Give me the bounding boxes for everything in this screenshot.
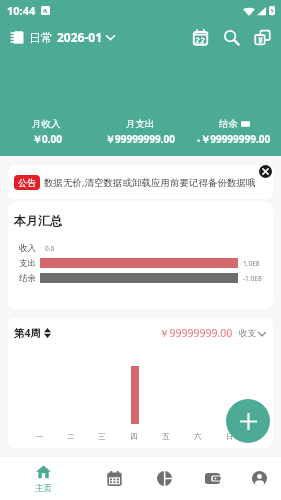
- button[interactable]: Calendar: [86, 457, 142, 500]
- button[interactable]: 收支: [239, 328, 266, 339]
- button[interactable]: 日常: [29, 29, 115, 45]
- button[interactable]: Profile: [238, 457, 281, 500]
- button[interactable]: 第4周: [14, 326, 51, 340]
- staticText: 一: [36, 432, 44, 441]
- button[interactable]: Add record: [226, 399, 270, 443]
- button[interactable]: Calendar: [187, 24, 213, 50]
- staticText: 1.0E8: [243, 259, 260, 268]
- staticText: 支出: [19, 258, 36, 268]
- staticText: A: [43, 7, 48, 15]
- staticText: 三: [98, 432, 106, 441]
- staticText: 月支出: [126, 118, 155, 130]
- staticText: 收支: [239, 328, 256, 339]
- staticText: ￥99999999.00: [159, 326, 233, 340]
- staticText: 0.0: [45, 244, 55, 253]
- staticText: 第4周: [14, 326, 42, 340]
- staticText: 六: [194, 432, 202, 441]
- staticText: 结余: [219, 118, 238, 130]
- staticText: ￥99999999.00: [105, 132, 176, 146]
- staticText: -￥99999999.00: [197, 132, 271, 146]
- button[interactable]: 公告: [8, 165, 273, 199]
- button[interactable]: Search: [218, 24, 244, 50]
- staticText: 收入: [19, 243, 36, 253]
- staticText: 10:44: [7, 3, 36, 18]
- button[interactable]: Assets: [186, 457, 238, 500]
- staticText: -1.0E8: [243, 274, 262, 283]
- staticText: 数据无价,清空数据或卸载应用前要记得备份数据哦: [44, 176, 256, 189]
- staticText: 公告: [18, 177, 36, 188]
- staticText: 日常: [29, 29, 57, 45]
- staticText: 二: [67, 432, 75, 441]
- button[interactable]: Ledger: [7, 24, 27, 50]
- button[interactable]: Statistics: [142, 457, 186, 500]
- staticText: 五: [162, 432, 170, 441]
- button[interactable]: Close: [259, 165, 272, 178]
- staticText: 2026-01: [57, 29, 103, 45]
- staticText: 四: [130, 432, 138, 441]
- staticText: 结余: [19, 273, 36, 283]
- button[interactable]: Home: [0, 457, 86, 500]
- staticText: 主页: [35, 483, 52, 494]
- staticText: ￥0.00: [32, 132, 62, 146]
- button[interactable]: Accounts: [249, 24, 275, 50]
- staticText: 日: [226, 432, 234, 441]
- staticText: 本月汇总: [14, 213, 62, 228]
- staticText: 月收入: [32, 118, 61, 130]
